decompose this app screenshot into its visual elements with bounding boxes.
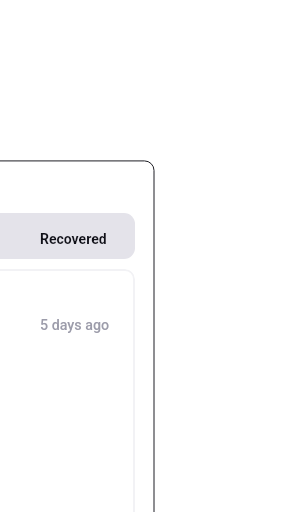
staticText: 5 days ago bbox=[40, 317, 110, 334]
other: Device preview frame bbox=[0, 0, 288, 512]
button[interactable]: Recovered bbox=[0, 213, 135, 259]
staticText: Recovered bbox=[40, 231, 107, 247]
button[interactable]: 5 days ago bbox=[0, 269, 135, 512]
